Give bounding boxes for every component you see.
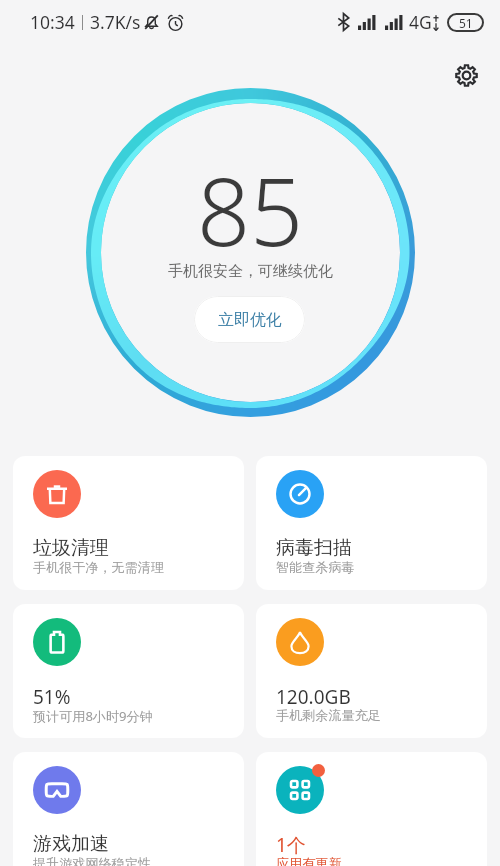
staticText: 手机很安全，可继续优化 bbox=[168, 262, 333, 281]
staticText: 1个 bbox=[276, 832, 306, 858]
button[interactable]: 立即优化 bbox=[194, 296, 305, 343]
staticText: 10:34 bbox=[30, 10, 75, 34]
button[interactable]: 病毒扫描 bbox=[256, 456, 487, 590]
button[interactable]: 1个 bbox=[256, 752, 487, 866]
staticText: 智能查杀病毒 bbox=[276, 559, 355, 576]
button[interactable]: 垃圾清理 bbox=[13, 456, 244, 590]
staticText: 4G bbox=[409, 10, 432, 34]
staticText: 游戏加速 bbox=[33, 832, 109, 856]
staticText: 提升游戏网络稳定性 bbox=[33, 855, 151, 866]
staticText: 手机剩余流量充足 bbox=[276, 707, 381, 724]
button[interactable]: Settings bbox=[446, 55, 486, 95]
staticText: 垃圾清理 bbox=[33, 536, 109, 560]
button[interactable]: 51% bbox=[13, 604, 244, 738]
button[interactable]: 游戏加速 bbox=[13, 752, 244, 866]
staticText: 120.0GB bbox=[276, 684, 351, 710]
staticText: 85 bbox=[197, 147, 304, 274]
staticText: 立即优化 bbox=[218, 310, 282, 330]
staticText: 51 bbox=[459, 15, 473, 31]
button[interactable]: 120.0GB bbox=[256, 604, 487, 738]
staticText: 预计可用8小时9分钟 bbox=[33, 707, 153, 725]
staticText: 病毒扫描 bbox=[276, 536, 352, 560]
staticText: 应用有更新 bbox=[276, 855, 342, 866]
staticText: 51% bbox=[33, 684, 71, 710]
staticText: 手机很干净，无需清理 bbox=[33, 559, 164, 576]
staticText: 3.7K/s bbox=[90, 10, 141, 34]
